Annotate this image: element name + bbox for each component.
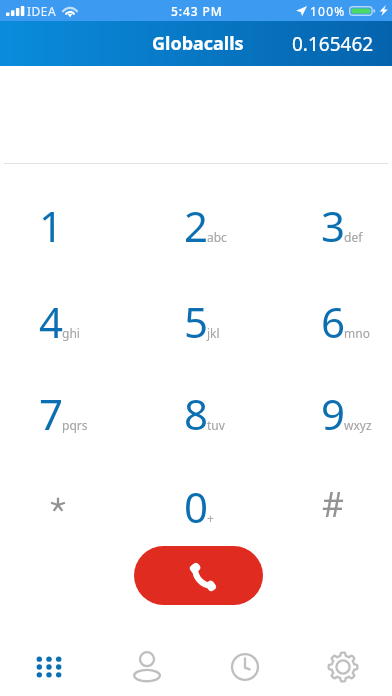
staticText: 3 [321,197,346,249]
button[interactable]: 7 [18,385,84,437]
button[interactable]: Contacts [98,621,196,696]
staticText: 1 [39,197,64,249]
staticText: tuv [207,417,225,433]
staticText: 8 [184,385,209,437]
button[interactable]: 4 [18,293,84,345]
staticText: 4 [39,293,64,345]
button[interactable]: 3 [300,197,366,249]
button[interactable]: Recents [196,621,294,696]
staticText: ghi [62,325,80,341]
button[interactable]: 5 [163,293,229,345]
button[interactable]: 6 [300,293,366,345]
staticText: 100% [310,3,346,19]
button[interactable]: Keypad [0,621,98,696]
staticText: + [207,510,214,526]
staticText: Globacalls [152,31,244,56]
staticText: mno [344,325,370,341]
staticText: 0.165462 [292,31,374,57]
button[interactable]: Settings [294,621,392,696]
staticText: 5:43 PM [171,3,223,19]
staticText: jkl [207,325,220,341]
staticText: abc [207,229,227,245]
staticText: 7 [39,385,64,437]
staticText: # [322,481,344,527]
button[interactable]: 9 [300,385,366,437]
staticText: 5 [184,293,209,345]
button[interactable] [18,478,84,530]
button[interactable]: 2 [163,197,229,249]
staticText: 9 [321,385,346,437]
staticText: 2 [184,197,209,249]
staticText: def [344,229,363,245]
button[interactable]: 1 [18,197,84,249]
button[interactable]: # [300,478,366,530]
button[interactable]: Call [134,546,263,605]
button[interactable]: 8 [163,385,229,437]
staticText: wxyz [344,417,372,433]
staticText: pqrs [62,417,88,433]
button[interactable]: 0 [163,478,229,530]
staticText: 0 [184,478,209,530]
staticText: IDEA [27,3,57,19]
staticText: 6 [321,293,346,345]
